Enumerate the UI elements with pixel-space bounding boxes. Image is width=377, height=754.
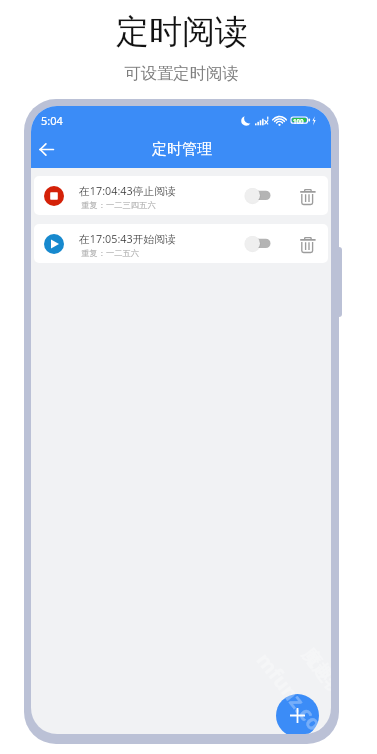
staticText: 魔趣软件园 (297, 644, 331, 729)
staticText: 可设置定时阅读 (124, 63, 239, 84)
staticText: 在17:05:43开始阅读 (79, 231, 176, 246)
staticText: 100 (293, 117, 304, 125)
button[interactable]: Toggle alarm (245, 232, 275, 255)
button[interactable]: 在17:04:43停止阅读 (34, 176, 328, 215)
button[interactable]: Back (32, 135, 60, 163)
staticText: 重复：一二五六 (81, 248, 140, 258)
button[interactable]: Toggle alarm (245, 184, 275, 207)
staticText: 在17:04:43停止阅读 (79, 183, 176, 198)
staticText: 定时管理 (152, 140, 212, 159)
button[interactable]: Delete (294, 231, 321, 258)
button[interactable]: Delete (294, 183, 321, 210)
staticText: 重复：一二三四五六 (81, 200, 156, 210)
staticText: 5:04 (41, 113, 63, 128)
staticText: mfunz.com (251, 647, 331, 734)
button[interactable]: Add alarm (276, 694, 319, 734)
staticText: 定时阅读 (116, 11, 248, 53)
button[interactable]: 在17:05:43开始阅读 (34, 224, 328, 263)
